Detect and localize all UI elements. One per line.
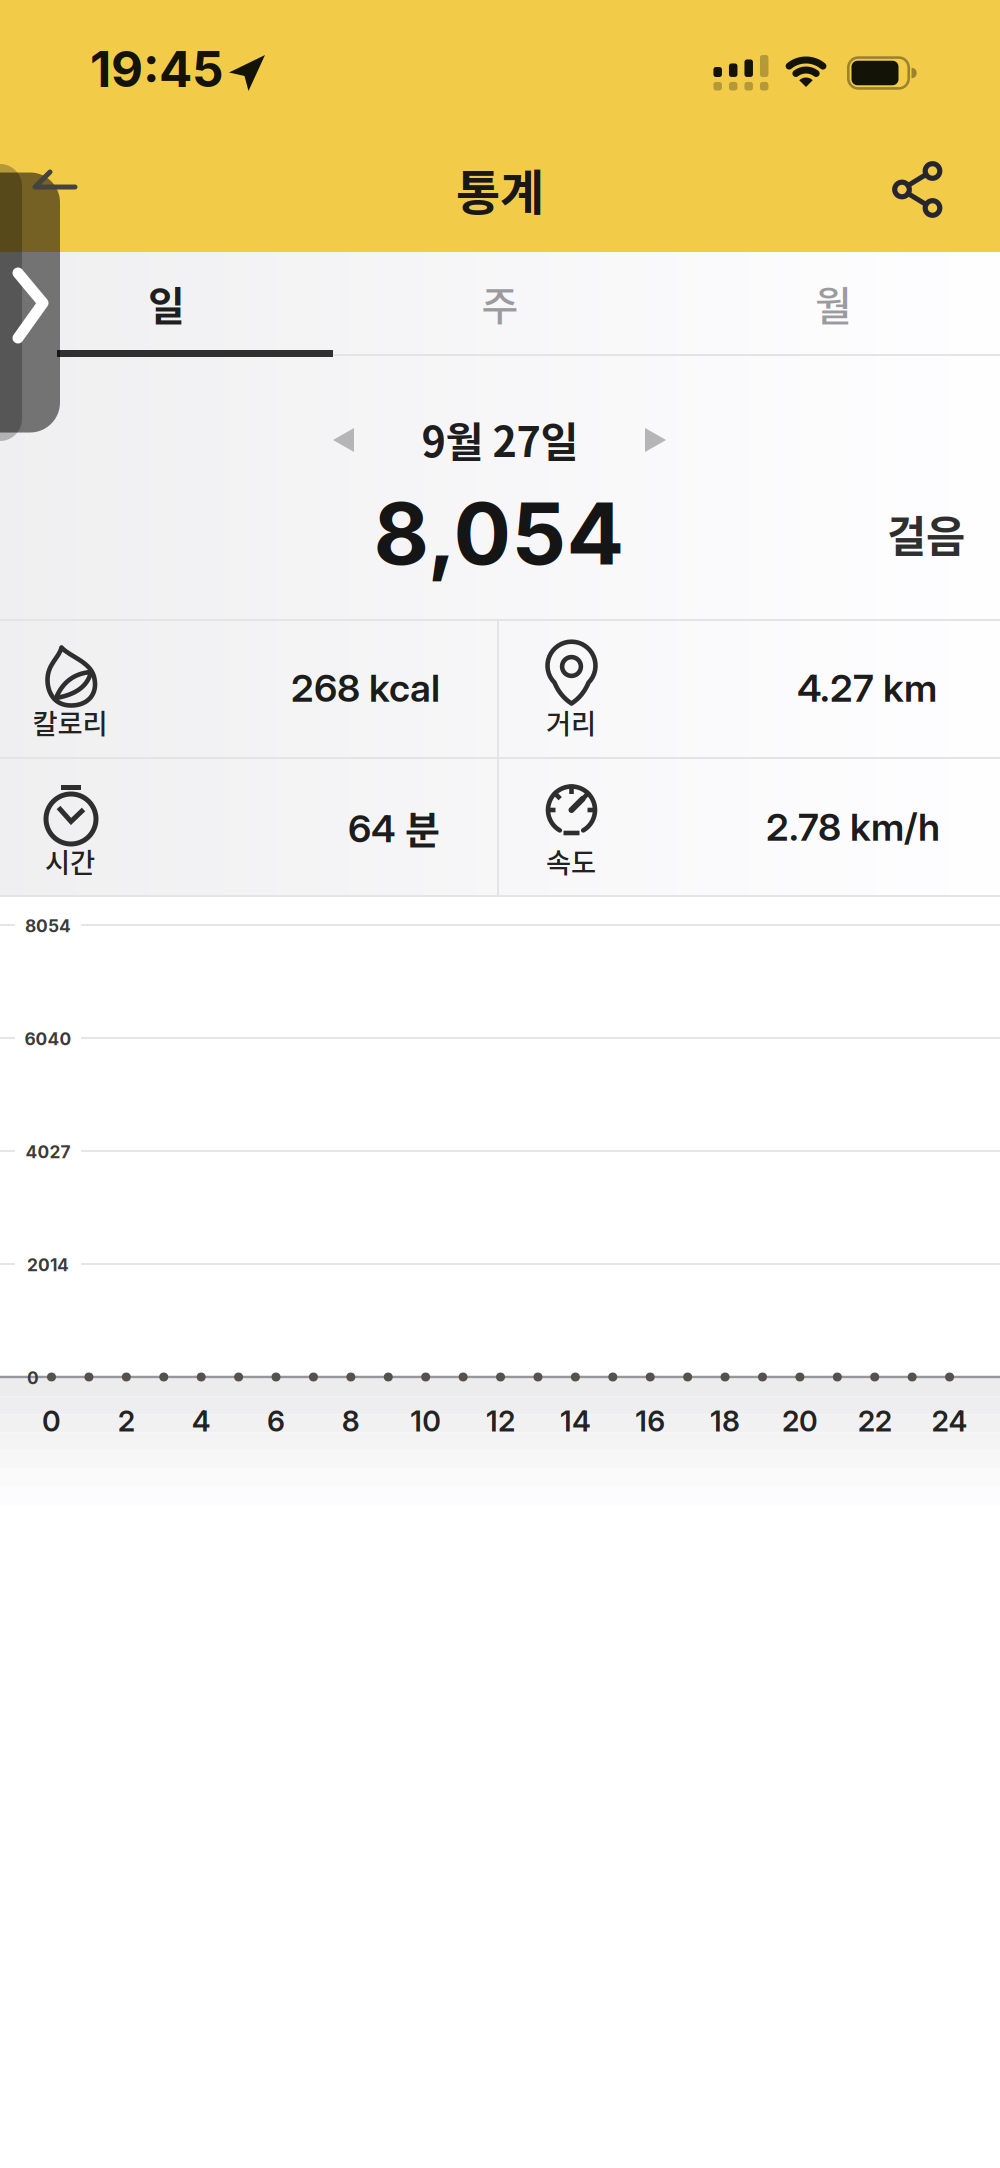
staticText: 일 xyxy=(148,274,185,332)
staticText: 64 분 xyxy=(348,800,440,854)
staticText: 4 xyxy=(192,1404,211,1438)
button[interactable]: Open widget drawer xyxy=(0,164,60,441)
staticText: 시간 xyxy=(45,841,95,881)
staticText: 속도 xyxy=(546,841,596,881)
staticText: 주 xyxy=(481,274,518,332)
button[interactable]: Back xyxy=(17,151,93,227)
staticText: 6040 xyxy=(24,1028,71,1049)
staticText: 24 xyxy=(932,1404,968,1438)
staticText: 19:45 xyxy=(90,39,224,99)
staticText: 2014 xyxy=(27,1254,69,1275)
staticText: 4.27 km xyxy=(797,665,937,711)
button[interactable]: Previous day xyxy=(314,410,374,470)
staticText: 걸음 xyxy=(887,503,965,565)
staticText: 월 xyxy=(815,274,852,332)
staticText: 16 xyxy=(635,1404,665,1438)
staticText: 8 xyxy=(342,1404,360,1438)
staticText: 12 xyxy=(486,1404,515,1438)
staticText: 10 xyxy=(410,1404,441,1438)
staticText: 통계 xyxy=(456,154,544,224)
button[interactable]: 주 xyxy=(333,253,666,353)
staticText: 2 xyxy=(118,1404,135,1438)
button[interactable]: 일 xyxy=(0,253,333,353)
button[interactable]: 월 xyxy=(667,253,1000,353)
staticText: 22 xyxy=(858,1404,892,1438)
staticText: 칼로리 xyxy=(32,702,107,742)
staticText: 8,054 xyxy=(373,482,624,585)
staticText: 2.78 km/h xyxy=(766,804,940,850)
staticText: 14 xyxy=(560,1404,591,1438)
staticText: 9월 27일 xyxy=(421,409,578,469)
staticText: 6 xyxy=(267,1404,285,1438)
staticText: 20 xyxy=(782,1404,818,1438)
staticText: 8054 xyxy=(25,915,71,936)
staticText: 0 xyxy=(42,1404,61,1438)
button[interactable]: Share xyxy=(881,154,957,230)
staticText: 0 xyxy=(27,1367,39,1388)
staticText: 4027 xyxy=(25,1141,70,1162)
button[interactable]: Next day xyxy=(625,410,685,470)
staticText: 268 kcal xyxy=(291,665,440,711)
staticText: 거리 xyxy=(546,702,596,742)
staticText: 18 xyxy=(710,1404,740,1438)
